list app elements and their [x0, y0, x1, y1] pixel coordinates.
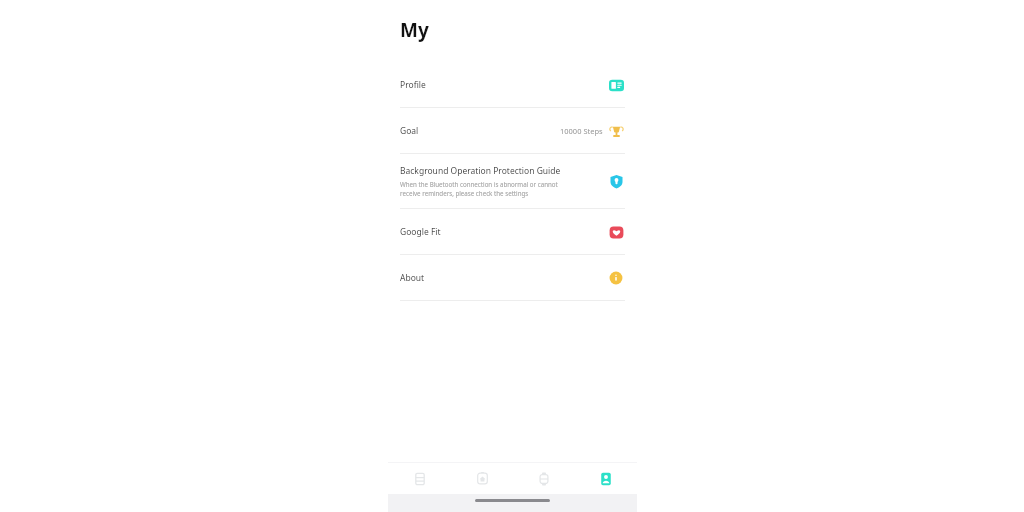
other: Google Fit — [609, 225, 624, 240]
button[interactable]: Records — [388, 463, 451, 494]
staticText: Google Fit — [400, 226, 441, 238]
button[interactable]: My — [575, 463, 637, 494]
other: About — [609, 271, 623, 285]
staticText: 10000 Steps — [560, 126, 603, 136]
button[interactable]: Background Operation Protection Guide — [388, 154, 637, 208]
staticText: Background Operation Protection Guide — [400, 165, 561, 177]
other: Background operation protection guide — [609, 174, 624, 189]
staticText: When the Bluetooth connection is abnorma… — [400, 180, 558, 198]
button[interactable]: Google Fit — [388, 209, 637, 254]
staticText: Profile — [400, 79, 426, 91]
other: Goal trophy — [609, 124, 624, 139]
button[interactable]: Profile — [388, 63, 637, 107]
staticText: My — [400, 17, 429, 43]
button[interactable]: Device — [513, 463, 575, 494]
button[interactable]: Goal — [388, 108, 637, 153]
staticText: Goal — [400, 125, 419, 137]
button[interactable]: Home — [451, 463, 513, 494]
other: Profile — [609, 78, 624, 93]
button[interactable]: About — [388, 255, 637, 300]
staticText: About — [400, 272, 425, 284]
